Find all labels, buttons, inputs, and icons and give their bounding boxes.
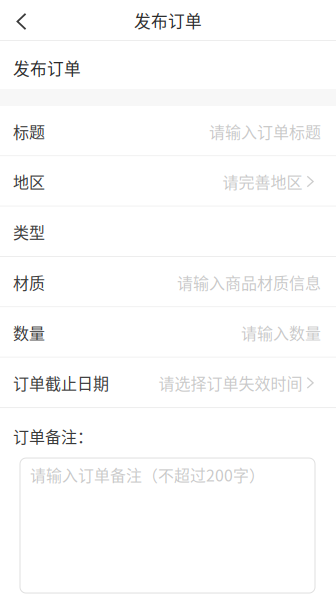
button[interactable]: 订单截止日期	[0, 358, 336, 408]
staticText: 请选择订单失效时间	[158, 371, 302, 394]
button[interactable]: 地区	[0, 156, 336, 207]
staticText: 请输入订单备注（不超过200字）	[30, 463, 265, 486]
staticText: 订单截止日期	[13, 371, 109, 394]
button[interactable]: 材质	[0, 257, 336, 307]
staticText: 发布订单	[134, 8, 202, 33]
staticText: 请输入订单标题	[209, 120, 321, 143]
staticText: 数量	[13, 321, 45, 344]
button[interactable]: Back	[0, 0, 42, 41]
staticText: 地区	[13, 170, 45, 193]
button[interactable]: 数量	[0, 307, 336, 358]
staticText: 发布订单	[13, 56, 81, 80]
button[interactable]: 标题	[0, 106, 336, 156]
button[interactable]: 类型	[0, 207, 336, 257]
button[interactable]: 请输入订单备注（不超过200字）	[20, 458, 315, 593]
staticText: 请输入商品材质信息	[177, 271, 321, 294]
staticText: 请输入数量	[241, 321, 321, 344]
staticText: 订单备注：	[13, 424, 93, 448]
staticText: 类型	[13, 220, 45, 243]
staticText: 材质	[13, 271, 45, 294]
staticText: 标题	[13, 120, 45, 143]
staticText: 请完善地区	[222, 170, 302, 193]
